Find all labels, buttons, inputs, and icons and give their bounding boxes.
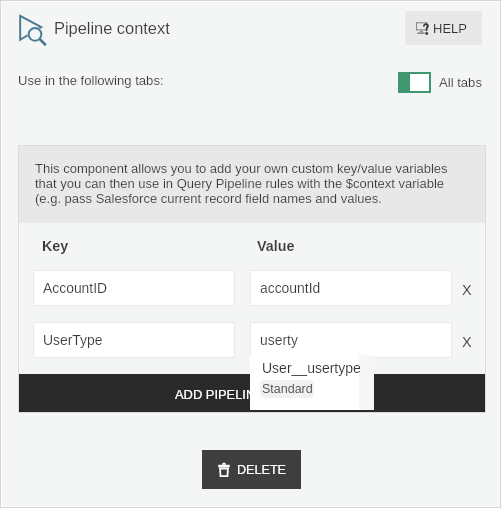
button[interactable]: DELETE [202, 450, 301, 489]
button[interactable]: UserType [33, 322, 235, 358]
staticText: accountId [260, 280, 321, 296]
staticText: This component allows you to add your ow… [35, 161, 448, 206]
staticText: Standard [262, 382, 313, 396]
staticText: HELP [433, 21, 467, 36]
button[interactable]: HELP [405, 11, 482, 45]
button[interactable]: Remove row [457, 280, 477, 300]
staticText: X [462, 334, 472, 350]
other: Pipeline [19, 15, 45, 41]
staticText: UserType [43, 332, 103, 348]
staticText: DELETE [237, 463, 286, 477]
staticText: User__usertype [262, 360, 361, 376]
staticText: ADD PIPELINE CONTEXT [175, 387, 330, 401]
staticText: AccountID [43, 280, 108, 296]
staticText: Use in the following tabs: [18, 73, 164, 88]
staticText: X [462, 282, 472, 298]
staticText: Key [42, 238, 69, 254]
button[interactable]: ADD PIPELINE CONTEXT [18, 374, 486, 413]
staticText: userty [260, 332, 298, 348]
button[interactable]: AccountID [33, 270, 235, 306]
staticText: Value [257, 238, 295, 254]
button[interactable]: accountId [250, 270, 452, 306]
staticText: All tabs [439, 75, 482, 90]
staticText: Pipeline context [54, 19, 170, 37]
button[interactable]: All tabs toggle [398, 72, 431, 93]
button[interactable]: userty [250, 322, 452, 358]
button[interactable]: Remove row [457, 332, 477, 352]
